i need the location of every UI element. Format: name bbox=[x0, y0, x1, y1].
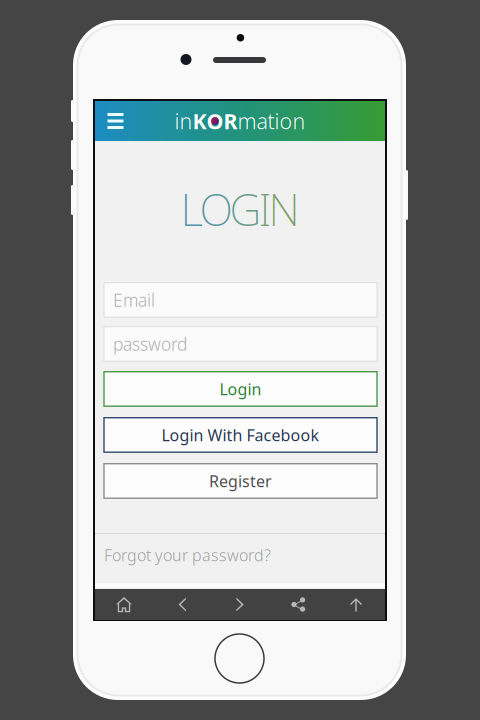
staticText: L bbox=[180, 180, 202, 238]
staticText: O bbox=[206, 107, 223, 135]
staticText: O bbox=[199, 180, 232, 238]
staticText: mation bbox=[237, 107, 305, 135]
button[interactable]: Login bbox=[104, 372, 377, 406]
button[interactable]: Forward bbox=[211, 589, 269, 620]
button[interactable]: Share bbox=[269, 589, 327, 620]
button[interactable]: Register bbox=[104, 464, 377, 498]
staticText: password bbox=[113, 332, 187, 355]
staticText: I bbox=[258, 180, 271, 238]
staticText: Login bbox=[219, 378, 261, 399]
staticText: K bbox=[192, 107, 206, 135]
button[interactable]: Back bbox=[153, 589, 211, 620]
button[interactable]: Forgot your password? bbox=[95, 534, 385, 576]
staticText: G bbox=[229, 180, 261, 238]
staticText: Email bbox=[113, 288, 155, 311]
button[interactable]: Open in bbox=[327, 589, 385, 620]
staticText: N bbox=[268, 180, 299, 238]
staticText: R bbox=[223, 107, 237, 135]
staticText: in bbox=[174, 107, 192, 135]
staticText: Forgot your password? bbox=[104, 544, 271, 566]
button[interactable]: Login With Facebook bbox=[104, 418, 377, 452]
staticText: Login With Facebook bbox=[161, 424, 319, 445]
button[interactable]: Home bbox=[95, 589, 153, 620]
button[interactable]: Menu bbox=[100, 106, 130, 136]
staticText: Register bbox=[209, 470, 272, 491]
